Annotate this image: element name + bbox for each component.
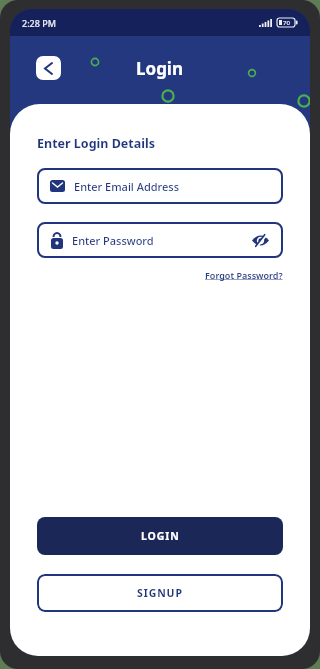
button[interactable]: Forgot Password?	[205, 269, 283, 281]
staticText: 2:28 PM	[22, 17, 56, 29]
staticText: LOGIN	[141, 529, 180, 543]
button[interactable]: Enter Password	[37, 222, 283, 258]
staticText: Enter Email Address	[74, 179, 179, 194]
staticText: Enter Login Details	[37, 135, 155, 152]
staticText: Enter Password	[72, 233, 252, 248]
button[interactable]: LOGIN	[37, 517, 283, 555]
button[interactable]: Enter Email Address	[37, 168, 283, 204]
staticText: Login	[136, 57, 184, 80]
button[interactable]	[36, 56, 61, 80]
staticText: SIGNUP	[137, 586, 183, 600]
button[interactable]: SIGNUP	[37, 574, 283, 612]
staticText: 70	[283, 19, 290, 27]
